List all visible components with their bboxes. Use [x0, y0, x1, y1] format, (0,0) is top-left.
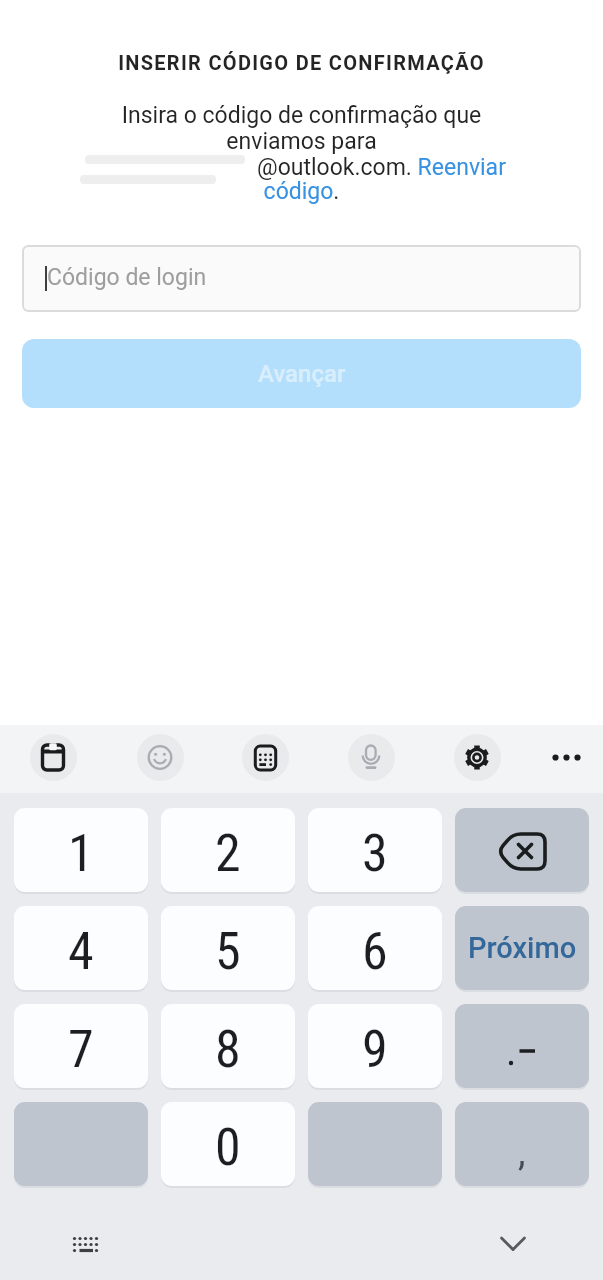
button[interactable]: [455, 808, 589, 892]
button[interactable]: [348, 734, 395, 781]
button[interactable]: 3: [308, 808, 442, 892]
staticText: @outlook.com. Reenviar: [257, 154, 506, 181]
button[interactable]: Avançar: [22, 339, 581, 408]
staticText: 1: [68, 823, 94, 884]
button[interactable]: [455, 1004, 589, 1088]
button[interactable]: 2: [161, 808, 295, 892]
staticText: ,: [518, 1130, 526, 1175]
button[interactable]: [308, 1102, 442, 1186]
button[interactable]: 7: [14, 1004, 148, 1088]
button[interactable]: Próximo: [455, 906, 589, 990]
button[interactable]: 1: [14, 808, 148, 892]
button[interactable]: 9: [308, 1004, 442, 1088]
staticText: Avançar: [258, 360, 346, 388]
staticText: INSERIR CÓDIGO DE CONFIRMAÇÃO: [0, 51, 603, 74]
button[interactable]: 8: [161, 1004, 295, 1088]
button[interactable]: 4: [14, 906, 148, 990]
button[interactable]: [137, 734, 184, 781]
button[interactable]: [30, 734, 77, 781]
button[interactable]: 6: [308, 906, 442, 990]
staticText: código.: [0, 178, 603, 205]
button[interactable]: [62, 1225, 112, 1265]
staticText: 8: [215, 1019, 241, 1080]
button[interactable]: Código de login: [22, 245, 581, 312]
staticText: Código de login: [47, 264, 207, 291]
button[interactable]: [545, 737, 589, 778]
staticText: 2: [215, 823, 241, 884]
staticText: 4: [68, 921, 94, 982]
button[interactable]: 5: [161, 906, 295, 990]
button[interactable]: [454, 734, 501, 781]
staticText: 5: [215, 921, 241, 982]
button[interactable]: [490, 1225, 536, 1265]
staticText: Insira o código de confirmação que: [0, 102, 603, 129]
staticText: enviamos para: [0, 128, 603, 155]
staticText: 6: [362, 921, 388, 982]
staticText: 9: [362, 1019, 388, 1080]
button[interactable]: [242, 734, 289, 781]
staticText: 7: [68, 1019, 94, 1080]
button[interactable]: [14, 1102, 148, 1186]
button[interactable]: 0: [161, 1102, 295, 1186]
staticText: Próximo: [468, 931, 577, 965]
staticText: 0: [215, 1117, 241, 1178]
staticText: 3: [362, 823, 388, 884]
button[interactable]: ,: [455, 1102, 589, 1186]
